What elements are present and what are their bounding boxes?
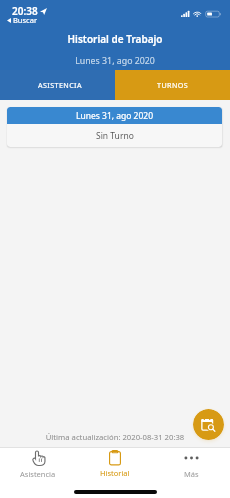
staticText: Historial de Trabajo [0,32,230,46]
staticText: Lunes 31, ago 2020 [76,110,154,122]
staticText: Sin Turno [96,130,134,142]
staticText: Asistencia [20,469,56,479]
button[interactable]: Más [153,448,230,498]
button[interactable]: Lunes 31, ago 2020 [7,107,222,147]
staticText: 20:38 [12,4,38,18]
button[interactable]: ASISTENCIA [0,70,115,100]
staticText: Última actualización: 2020-08-31 20:38 [0,432,230,442]
staticText: TURNOS [157,80,189,90]
staticText: ASISTENCIA [38,80,82,90]
button[interactable]: Asistencia [0,448,76,498]
staticText: Lunes 31, ago 2020 [0,55,230,67]
staticText: Más [184,469,199,479]
staticText: Buscar [13,15,38,25]
staticText: Historial [100,468,130,478]
button[interactable]: Historial [76,448,153,498]
button[interactable]: Buscar por fecha [193,409,224,440]
button[interactable]: TURNOS [115,70,230,100]
